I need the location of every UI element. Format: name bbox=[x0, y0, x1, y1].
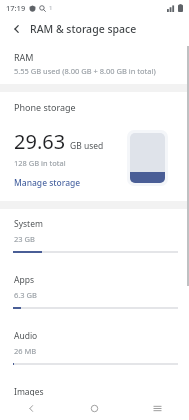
button[interactable]: Back bbox=[8, 20, 26, 38]
button[interactable]: Images bbox=[0, 377, 189, 396]
staticText: RAM bbox=[14, 51, 34, 63]
staticText: 128 GB in total bbox=[14, 158, 66, 168]
button[interactable]: Recent apps bbox=[126, 396, 189, 420]
staticText: Audio bbox=[14, 330, 38, 342]
staticText: System bbox=[14, 218, 43, 230]
staticText: 23 GB bbox=[14, 234, 35, 244]
staticText: 29.63 bbox=[14, 128, 66, 155]
staticText: Images bbox=[14, 386, 44, 396]
button[interactable]: Back bbox=[0, 396, 63, 420]
button[interactable]: Audio bbox=[0, 321, 189, 377]
button[interactable]: Apps bbox=[0, 265, 189, 321]
staticText: Phone storage bbox=[14, 101, 76, 113]
staticText: 26 MB bbox=[14, 346, 37, 356]
staticText: GB used bbox=[70, 140, 104, 152]
staticText: Apps bbox=[14, 274, 34, 286]
staticText: 1 bbox=[49, 4, 53, 12]
staticText: 6.3 GB bbox=[14, 290, 37, 300]
button[interactable]: System bbox=[0, 209, 189, 265]
staticText: 5.55 GB used (8.00 GB + 8.00 GB in total… bbox=[14, 66, 156, 76]
button[interactable]: RAM bbox=[0, 42, 189, 84]
button[interactable]: Home bbox=[63, 396, 126, 420]
button[interactable]: Manage storage bbox=[14, 177, 81, 189]
staticText: 17:19 bbox=[6, 3, 26, 13]
staticText: RAM & storage space bbox=[30, 22, 137, 36]
staticText: Manage storage bbox=[14, 177, 81, 189]
